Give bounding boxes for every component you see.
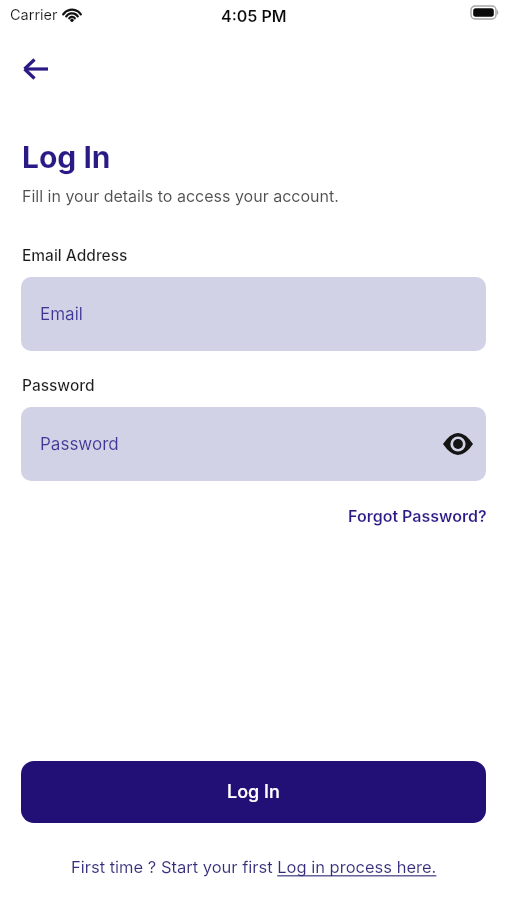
button[interactable]: Password: [21, 407, 486, 481]
staticText: Fill in your details to access your acco…: [22, 186, 339, 205]
staticText: Email Address: [22, 246, 128, 265]
staticText: Password: [22, 376, 95, 395]
button[interactable]: [16, 52, 54, 86]
button[interactable]: First time ? Start your first Log in pro…: [71, 857, 437, 877]
staticText: Email: [40, 304, 83, 325]
button[interactable]: [438, 424, 478, 464]
button[interactable]: Log In: [21, 761, 486, 823]
staticText: Log In: [227, 781, 280, 803]
staticText: Forgot Password?: [348, 506, 487, 525]
staticText: Log In: [22, 139, 111, 175]
staticText: 4:05 PM: [221, 6, 287, 25]
staticText: First time ? Start your first Log in pro…: [71, 857, 437, 877]
button[interactable]: Email: [21, 277, 486, 351]
button[interactable]: Forgot Password?: [348, 506, 487, 525]
staticText: Carrier: [10, 6, 58, 24]
staticText: Password: [40, 434, 119, 455]
